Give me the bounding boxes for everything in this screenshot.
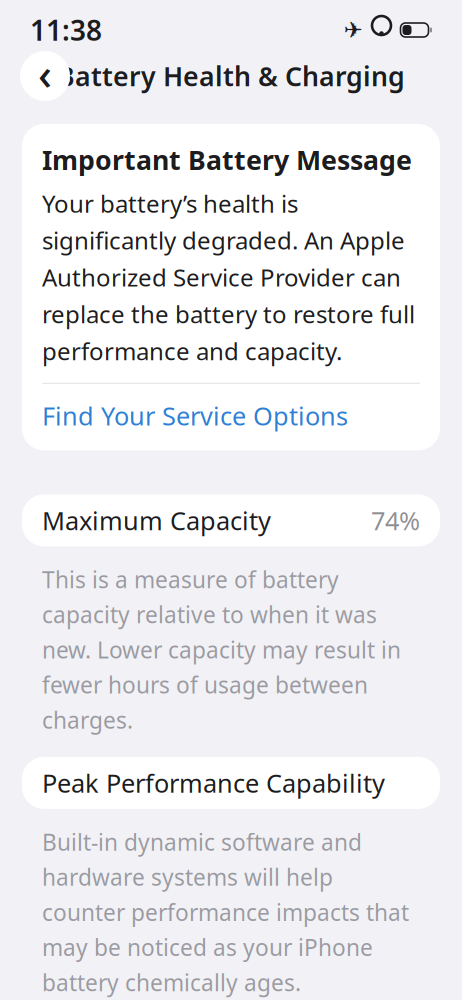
staticText: This is a measure of battery capacity re…: [42, 564, 401, 735]
staticText: Battery Health & Charging: [57, 58, 405, 94]
staticText: Important Battery Message: [42, 142, 412, 177]
button[interactable]: Peak Performance Capability: [0, 757, 462, 809]
staticText: Maximum Capacity: [42, 504, 271, 537]
button[interactable]: Back: [20, 45, 70, 107]
staticText: Your battery’s health is significantly d…: [42, 187, 415, 367]
button[interactable]: Find Your Service Options: [42, 399, 348, 432]
staticText: Built-in dynamic software and hardware s…: [42, 827, 409, 997]
staticText: 74%: [371, 504, 420, 537]
staticText: 11:38: [30, 11, 102, 49]
staticText: ‹: [38, 45, 52, 102]
staticText: Find Your Service Options: [42, 399, 348, 432]
staticText: Peak Performance Capability: [42, 766, 385, 800]
staticText: ✈: [343, 17, 362, 43]
